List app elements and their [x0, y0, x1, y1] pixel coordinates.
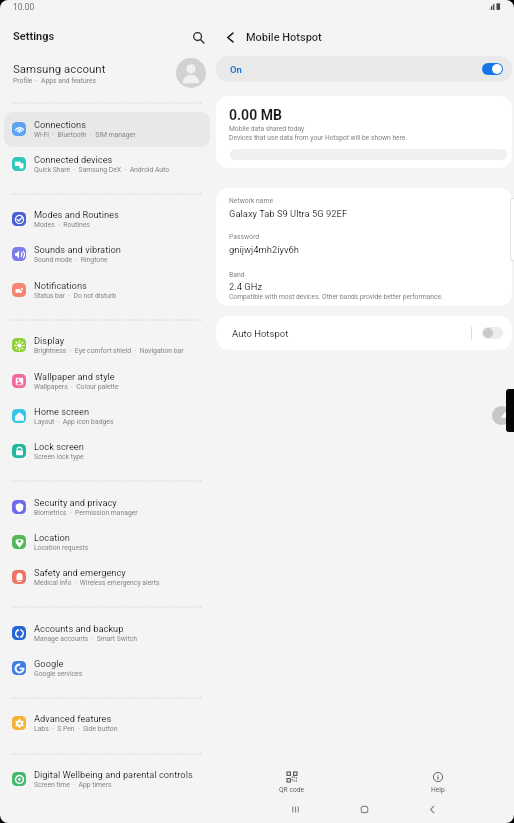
staticText: Auto Hotspot: [232, 328, 289, 339]
staticText: Sounds and vibration: [34, 244, 121, 255]
staticText: Compatible with most devices. Other band…: [229, 293, 443, 301]
button[interactable]: Sounds and vibration: [4, 237, 210, 272]
button[interactable]: Home: [352, 797, 376, 821]
staticText: Layout · App icon badges: [34, 418, 114, 426]
staticText: Quick Share · Samsung DeX · Android Auto: [34, 166, 170, 174]
button[interactable]: Accounts and backup: [4, 616, 210, 651]
staticText: Galaxy Tab S9 Ultra 5G 92EF: [229, 208, 348, 219]
staticText: Help: [431, 786, 445, 794]
staticText: Notifications: [34, 280, 87, 291]
staticText: gnijwj4mh2iyv6h: [229, 244, 299, 255]
staticText: 0.00 MB: [229, 107, 282, 123]
staticText: Status bar · Do not disturb: [34, 292, 117, 300]
staticText: Wallpaper and style: [34, 371, 115, 382]
staticText: Wallpapers · Colour palette: [34, 383, 119, 391]
staticText: Connections: [34, 119, 86, 130]
button[interactable]: QR code: [264, 772, 320, 798]
staticText: Location requests: [34, 544, 89, 552]
staticText: Accounts and backup: [34, 623, 124, 634]
button[interactable]: Location: [4, 525, 210, 560]
button[interactable]: Notifications: [4, 273, 210, 308]
staticText: Manage accounts · Smart Switch: [34, 635, 138, 643]
staticText: Band: [229, 271, 245, 279]
staticText: Home screen: [34, 406, 90, 417]
staticText: Sound mode · Ringtone: [34, 256, 108, 264]
staticText: QR code: [279, 786, 305, 794]
button[interactable]: Recents: [283, 797, 307, 821]
button[interactable]: Back: [219, 26, 241, 48]
staticText: Modes and Routines: [34, 209, 119, 220]
button[interactable]: Samsung account: [0, 57, 214, 89]
button[interactable]: Home screen: [4, 399, 210, 434]
staticText: Advanced features: [34, 713, 112, 724]
staticText: Brightness · Eye comfort shield · Naviga…: [34, 347, 184, 355]
staticText: Settings: [13, 30, 55, 43]
button[interactable]: Modes and Routines: [4, 202, 210, 237]
button[interactable]: Safety and emergency: [4, 560, 210, 595]
button[interactable]: On: [216, 56, 512, 82]
button[interactable]: Connections: [4, 112, 210, 147]
button[interactable]: Auto Hotspot: [216, 316, 512, 350]
staticText: Connected devices: [34, 154, 113, 165]
staticText: Samsung account: [13, 62, 106, 75]
staticText: Network name: [229, 197, 274, 205]
staticText: Screen time · App timers: [34, 781, 112, 789]
staticText: Display: [34, 335, 65, 346]
staticText: Password: [229, 233, 260, 241]
staticText: Google: [34, 658, 64, 669]
staticText: Digital Wellbeing and parental controls: [34, 769, 193, 780]
staticText: Lock screen: [34, 441, 84, 452]
staticText: 10.00: [13, 2, 35, 12]
button[interactable]: Back: [420, 797, 444, 821]
button[interactable]: Wallpaper and style: [4, 364, 210, 399]
staticText: Modes · Routines: [34, 221, 90, 229]
staticText: Medical info · Wireless emergency alerts: [34, 579, 160, 587]
button[interactable]: Display: [4, 328, 210, 363]
button[interactable]: Security and privacy: [4, 490, 210, 525]
staticText: Profile · Apps and features: [13, 77, 97, 85]
staticText: Location: [34, 532, 70, 543]
staticText: Devices that use data from your Hotspot …: [229, 134, 408, 142]
staticText: 2.4 GHz: [229, 281, 263, 292]
staticText: Labs · S Pen · Side button: [34, 725, 118, 733]
button[interactable]: Edge panel: [492, 406, 511, 425]
staticText: On: [230, 64, 242, 75]
button[interactable]: Digital Wellbeing and parental controls: [4, 762, 210, 797]
button[interactable]: Advanced features: [4, 706, 210, 741]
staticText: Google services: [34, 670, 83, 678]
button[interactable]: Search: [186, 25, 210, 49]
staticText: Biometrics · Permission manager: [34, 509, 138, 517]
button[interactable]: Connected devices: [4, 147, 210, 182]
staticText: Mobile data shared today: [229, 125, 305, 133]
button[interactable]: Lock screen: [4, 434, 210, 469]
staticText: Screen lock type: [34, 453, 84, 461]
staticText: Security and privacy: [34, 497, 117, 508]
button[interactable]: Google: [4, 651, 210, 686]
staticText: Safety and emergency: [34, 567, 126, 578]
staticText: Mobile Hotspot: [246, 31, 322, 44]
staticText: Wi-Fi · Bluetooth · SIM manager: [34, 131, 136, 139]
button[interactable]: Help: [410, 772, 466, 798]
